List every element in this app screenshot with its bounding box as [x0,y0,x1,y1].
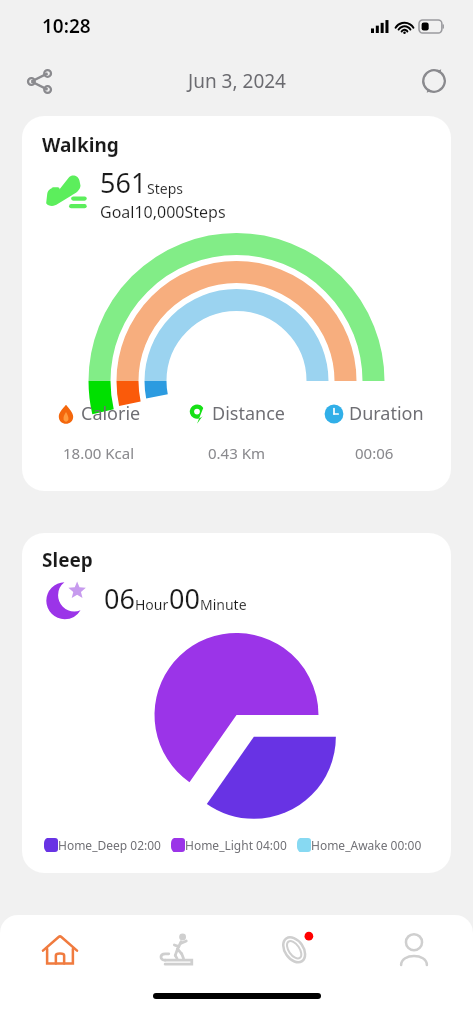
staticText: Goal10,000Steps [100,201,226,223]
button[interactable]: Share [14,56,64,106]
button[interactable]: Workout [119,921,237,981]
staticText: 0.43 Km [208,443,265,463]
button[interactable]: Distance [167,401,305,463]
staticText: 06 [104,580,135,617]
staticText: Walking [42,132,119,158]
button[interactable]: Home_Light 04:00 [171,837,287,853]
button[interactable]: Walking [22,116,451,491]
staticText: 561 [100,164,147,201]
staticText: Calorie [81,401,141,426]
button[interactable]: Home_Awake 00:00 [297,837,422,853]
button[interactable]: Sleep [22,533,451,873]
staticText: Home_Deep 02:00 [58,837,161,853]
button[interactable]: Device [237,921,355,981]
button[interactable]: Home [0,921,119,981]
staticText: Jun 3, 2024 [188,68,286,94]
staticText: Steps [147,179,183,198]
staticText: 18.00 Kcal [63,443,135,463]
button[interactable]: Refresh [409,56,459,106]
staticText: Home_Awake 00:00 [311,837,422,853]
staticText: 10:28 [42,13,91,39]
staticText: Distance [212,401,285,426]
button[interactable]: Duration [305,401,443,463]
staticText: 00:06 [355,443,394,463]
button[interactable]: Profile [355,921,473,981]
button[interactable]: Home_Deep 02:00 [44,837,161,853]
button[interactable]: Calorie [30,401,167,463]
staticText: Hour [135,595,169,614]
staticText: Minute [200,595,247,614]
staticText: Duration [349,401,424,426]
staticText: Home_Light 04:00 [185,837,287,853]
staticText: Sleep [42,547,93,573]
staticText: 00 [169,580,200,617]
